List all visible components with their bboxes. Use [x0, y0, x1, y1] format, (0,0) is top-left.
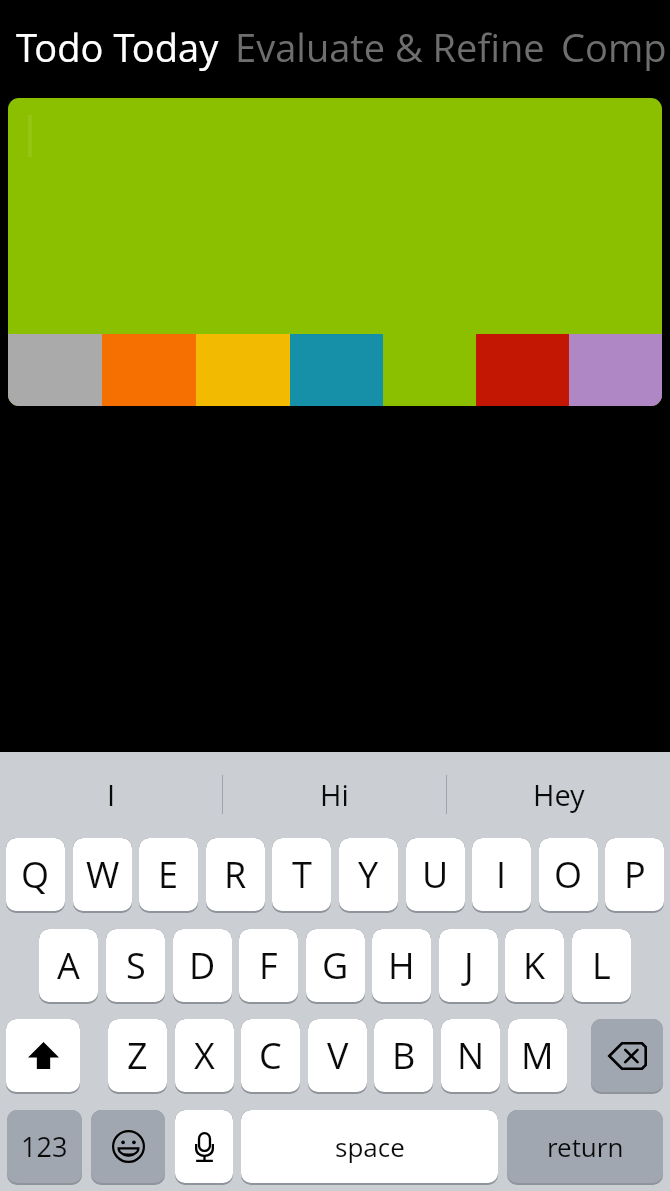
staticText: X — [194, 1031, 215, 1080]
button[interactable]: Backspace — [591, 1019, 663, 1092]
button[interactable]: A — [39, 929, 98, 1002]
staticText: R — [224, 850, 247, 899]
button[interactable]: W — [73, 838, 132, 911]
staticText: Todo Today — [16, 21, 219, 73]
button[interactable]: Grey label — [8, 98, 662, 406]
staticText: 123 — [21, 1128, 68, 1165]
staticText: W — [86, 850, 120, 899]
staticText: Y — [358, 850, 379, 899]
button[interactable]: D — [173, 929, 232, 1002]
staticText: Hey — [533, 775, 585, 814]
button[interactable]: S — [106, 929, 165, 1002]
staticText: I — [496, 850, 507, 899]
button[interactable]: Y — [339, 838, 398, 911]
button[interactable]: L — [572, 929, 631, 1002]
staticText: J — [464, 941, 474, 990]
button[interactable]: E — [139, 838, 198, 911]
button[interactable]: space — [241, 1110, 498, 1183]
staticText: U — [422, 850, 449, 899]
staticText: L — [592, 941, 611, 990]
staticText: Z — [127, 1031, 148, 1080]
button[interactable]: B — [374, 1019, 433, 1092]
staticText: C — [259, 1031, 282, 1080]
staticText: A — [57, 941, 80, 990]
staticText: B — [392, 1031, 416, 1080]
button[interactable]: Z — [108, 1019, 167, 1092]
button[interactable]: I — [472, 838, 531, 911]
staticText: space — [335, 1129, 405, 1164]
staticText: I — [107, 775, 116, 814]
button[interactable]: N — [441, 1019, 500, 1092]
staticText: V — [327, 1031, 349, 1080]
button[interactable]: V — [308, 1019, 367, 1092]
staticText: Evaluate & Refine — [235, 21, 545, 73]
button[interactable]: C — [241, 1019, 300, 1092]
button[interactable]: K — [505, 929, 564, 1002]
staticText: F — [259, 941, 278, 990]
button[interactable]: Hi — [223, 752, 446, 837]
button[interactable]: Shift — [6, 1019, 80, 1092]
staticText: N — [457, 1031, 485, 1080]
button[interactable]: Purple label — [569, 334, 662, 406]
staticText: O — [554, 850, 583, 899]
staticText: G — [322, 941, 349, 990]
button[interactable]: I — [0, 752, 222, 837]
staticText: T — [292, 850, 312, 899]
button[interactable]: Grey label — [8, 334, 102, 406]
staticText: M — [521, 1031, 554, 1080]
button[interactable]: R — [206, 838, 265, 911]
staticText: Completed — [561, 21, 670, 73]
button[interactable]: Emoji — [91, 1110, 165, 1183]
button[interactable]: F — [239, 929, 298, 1002]
staticText: return — [547, 1129, 624, 1164]
button[interactable]: Voice input — [175, 1110, 233, 1183]
button[interactable]: U — [406, 838, 465, 911]
staticText: Q — [21, 850, 50, 899]
button[interactable]: J — [439, 929, 498, 1002]
button[interactable]: H — [372, 929, 431, 1002]
staticText: E — [158, 850, 179, 899]
button[interactable]: P — [605, 838, 664, 911]
staticText: K — [523, 941, 546, 990]
staticText: Hi — [320, 775, 349, 814]
button[interactable]: O — [539, 838, 598, 911]
button[interactable]: Evaluate & Refine — [235, 21, 545, 73]
button[interactable]: Todo Today — [16, 21, 219, 73]
button[interactable]: T — [272, 838, 331, 911]
staticText: S — [126, 941, 146, 990]
button[interactable]: 123 — [7, 1110, 82, 1183]
staticText: D — [189, 941, 216, 990]
staticText: H — [388, 941, 415, 990]
button[interactable]: Q — [6, 838, 65, 911]
button[interactable]: Hey — [447, 752, 670, 837]
button[interactable]: G — [306, 929, 365, 1002]
button[interactable]: X — [175, 1019, 234, 1092]
button[interactable]: M — [508, 1019, 567, 1092]
button[interactable]: return — [507, 1110, 663, 1183]
button[interactable]: Completed — [561, 21, 670, 73]
staticText: P — [624, 850, 646, 899]
